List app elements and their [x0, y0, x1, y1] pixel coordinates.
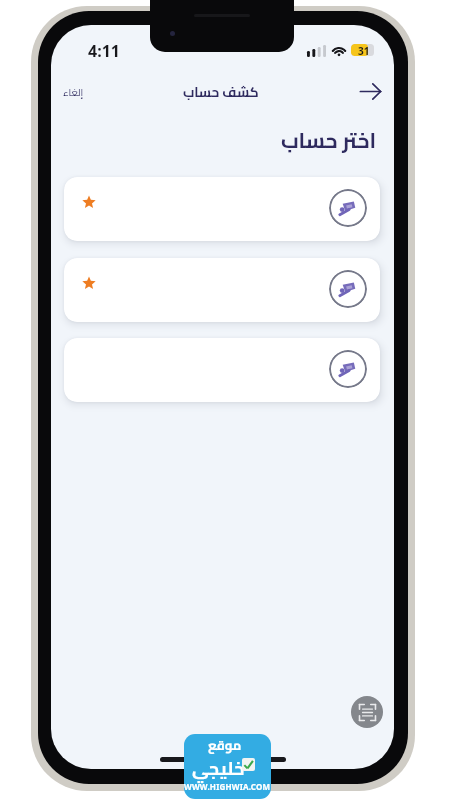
staticText: 31 [358, 44, 370, 56]
button[interactable]: Bank logo [329, 270, 367, 308]
button[interactable]: Scan document [351, 696, 383, 728]
staticText: كشف حساب [183, 79, 259, 104]
button[interactable]: Bank logo [64, 338, 380, 402]
button[interactable]: Bank logo [64, 258, 380, 322]
staticText: خليجي [192, 752, 245, 786]
staticText: اختر حساب [281, 121, 377, 160]
staticText: 4:11 [88, 40, 120, 62]
staticText: موقع [208, 734, 242, 757]
button[interactable]: إلغاء [57, 77, 90, 108]
staticText: WWW.HIGHWIA.COM [184, 781, 271, 792]
button[interactable]: Bank logo [329, 350, 367, 388]
button[interactable]: Bank logo [64, 177, 380, 241]
button[interactable]: Back [355, 76, 385, 106]
button[interactable]: Bank logo [329, 189, 367, 227]
